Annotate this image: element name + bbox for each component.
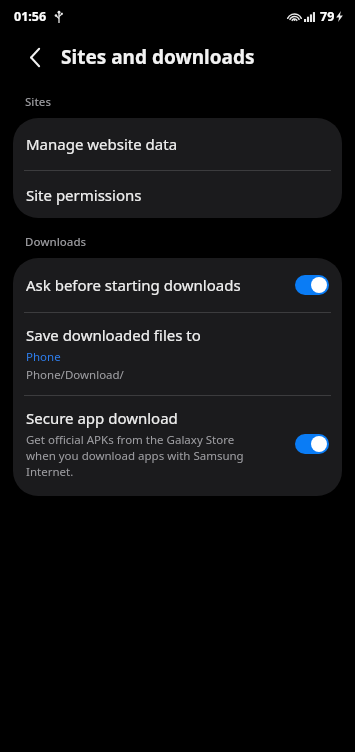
button[interactable]: Save downloaded files to (13, 313, 342, 395)
staticText: Downloads (25, 234, 87, 250)
button[interactable]: Toggle on (295, 434, 329, 454)
staticText: Get official APKs from the Galaxy Store … (26, 432, 244, 480)
button[interactable]: Toggle on (295, 275, 329, 295)
staticText: 79 (320, 8, 335, 25)
staticText: Save downloaded files to (26, 325, 201, 345)
staticText: Phone/Download/ (26, 367, 124, 383)
staticText: Ask before starting downloads (26, 275, 295, 295)
staticText: 01:56 (14, 8, 47, 25)
button[interactable]: Ask before starting downloads (13, 258, 342, 312)
staticText: Sites (25, 94, 52, 110)
button[interactable]: Back (20, 42, 50, 72)
button[interactable]: Secure app download (13, 396, 342, 496)
staticText: Sites and downloads (61, 44, 255, 70)
staticText: Phone (26, 349, 61, 365)
staticText: Secure app download (26, 408, 178, 428)
button[interactable]: Manage website data (13, 118, 342, 170)
button[interactable]: Site permissions (13, 171, 342, 218)
staticText: Site permissions (26, 185, 142, 205)
staticText: Manage website data (26, 134, 178, 154)
